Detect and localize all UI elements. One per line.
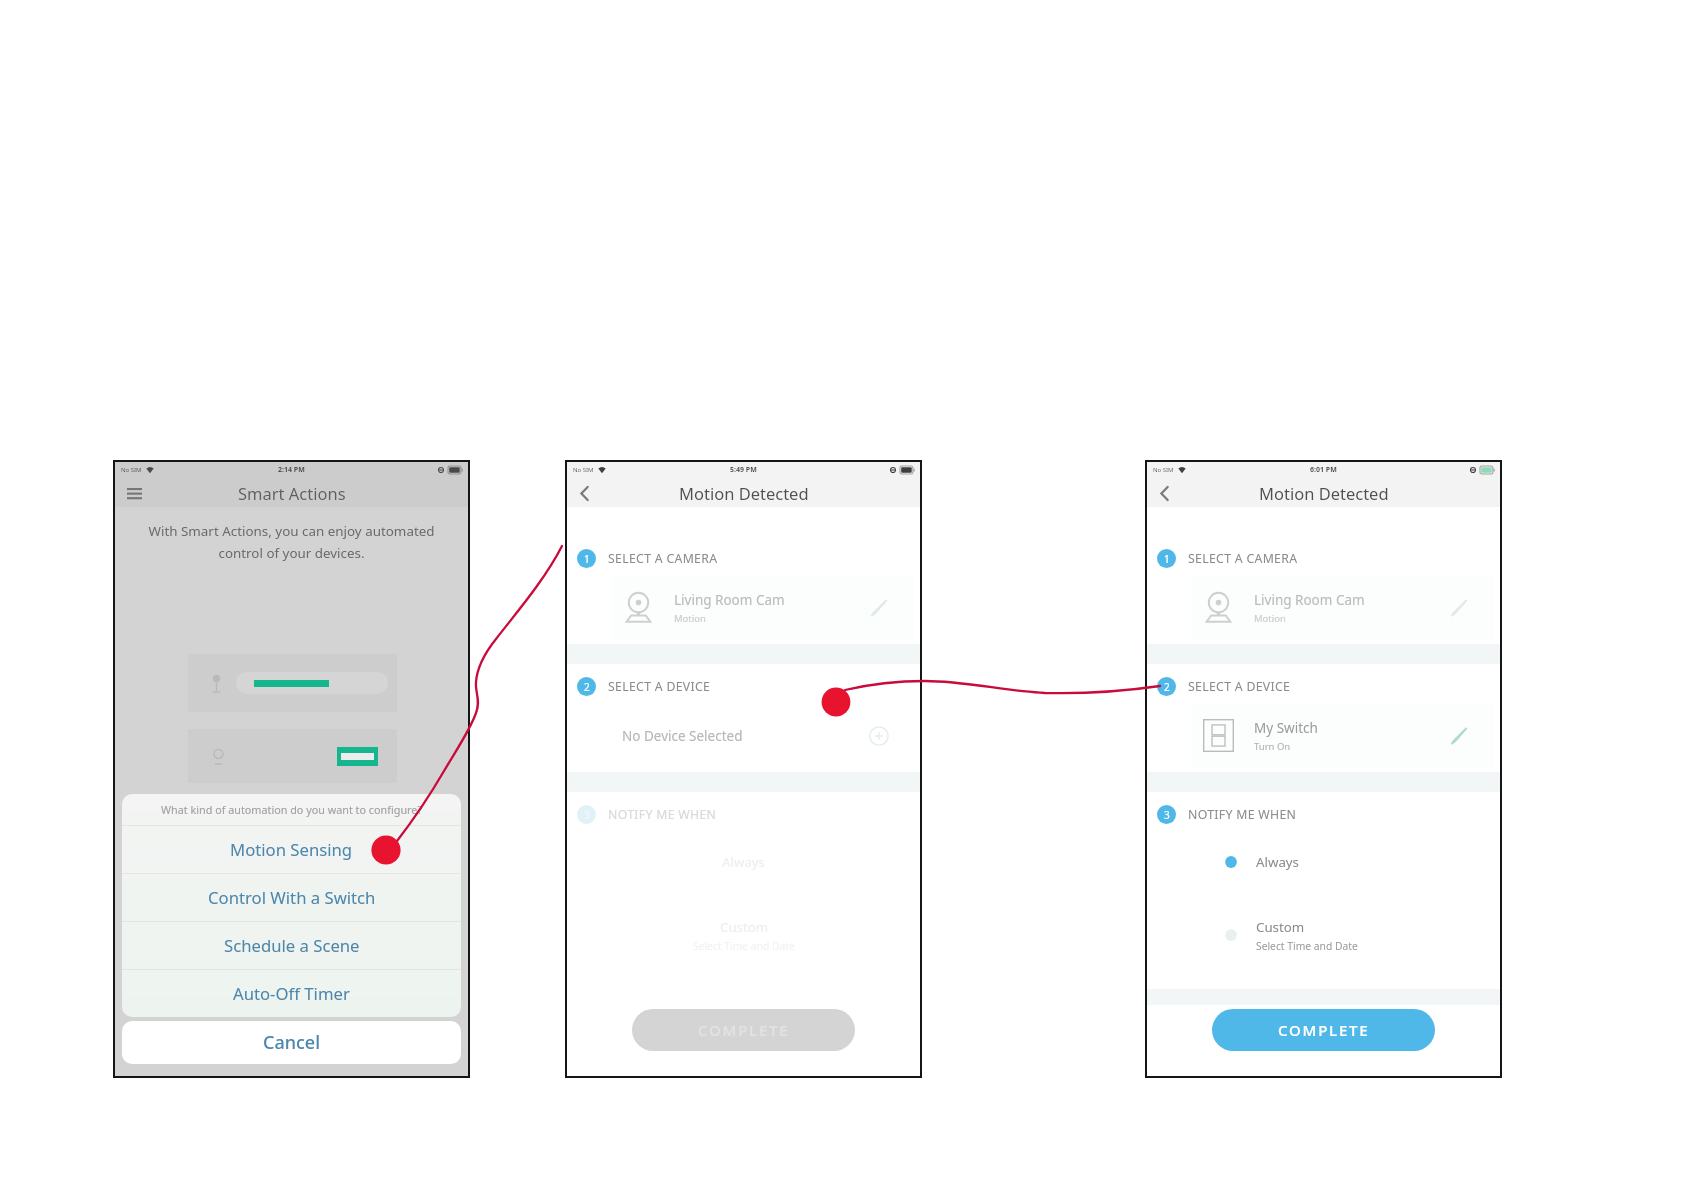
staticText: Living Room Cam (1254, 591, 1365, 609)
staticText: COMPLETE (698, 1020, 790, 1040)
staticText: Control With a Switch (208, 886, 376, 909)
staticText: What kind of automation do you want to c… (161, 802, 423, 817)
staticText: Motion Detected (1259, 482, 1389, 504)
staticText: Always (722, 853, 765, 871)
staticText: 1 (1164, 552, 1170, 566)
button[interactable] (188, 729, 397, 783)
button[interactable]: Edit Living Room Cam (1446, 595, 1472, 621)
staticText: 3 (584, 808, 590, 822)
staticText: No SIM (121, 466, 142, 474)
button[interactable]: Back (1153, 482, 1175, 504)
button[interactable]: Add device (866, 723, 892, 749)
button[interactable]: Menu (123, 482, 145, 504)
button[interactable]: Auto-Off Timer (122, 970, 461, 1017)
staticText: SELECT A CAMERA (608, 550, 718, 567)
staticText: Always (1256, 853, 1299, 871)
button[interactable]: Always (1224, 827, 1486, 897)
button[interactable]: COMPLETE (632, 1009, 855, 1051)
staticText: Motion (674, 612, 706, 625)
staticText: My Switch (1254, 719, 1318, 737)
staticText: NOTIFY ME WHEN (608, 806, 717, 823)
staticText: Select Time and Date (693, 939, 795, 953)
staticText: Cancel (263, 1030, 321, 1055)
staticText: SELECT A DEVICE (1188, 678, 1291, 695)
button[interactable]: Custom (1224, 897, 1486, 973)
staticText: No Device Selected (622, 727, 743, 745)
staticText: No SIM (1153, 466, 1174, 474)
button[interactable]: Living Room Cam (622, 575, 892, 640)
staticText: Custom (720, 918, 769, 936)
staticText: Auto-Off Timer (233, 982, 350, 1005)
button[interactable]: Edit Living Room Cam (866, 595, 892, 621)
staticText: Custom (1256, 918, 1305, 936)
staticText: SELECT A CAMERA (1188, 550, 1298, 567)
button[interactable]: Edit My Switch (1446, 723, 1472, 749)
staticText: Smart Actions (238, 482, 346, 504)
staticText: Motion Sensing (230, 838, 353, 861)
staticText: Living Room Cam (674, 591, 785, 609)
staticText: SELECT A DEVICE (608, 678, 711, 695)
staticText: Schedule a Scene (224, 934, 360, 957)
staticText: 2 (1164, 680, 1170, 694)
staticText: 5:49 PM (730, 465, 757, 475)
button[interactable]: Control With a Switch (122, 874, 461, 921)
button[interactable]: Schedule a Scene (122, 922, 461, 969)
staticText: COMPLETE (1278, 1020, 1370, 1040)
staticText: No SIM (573, 466, 594, 474)
staticText: 2 (584, 680, 590, 694)
staticText: 1 (584, 552, 590, 566)
button[interactable]: Cancel (122, 1021, 461, 1064)
staticText: With Smart Actions, you can enjoy automa… (115, 522, 468, 562)
button[interactable]: COMPLETE (1212, 1009, 1435, 1051)
button[interactable]: Back (573, 482, 595, 504)
button[interactable]: Living Room Cam (1202, 575, 1472, 640)
staticText: Turn On (1254, 740, 1291, 753)
button[interactable] (188, 654, 397, 712)
button[interactable]: No Device Selected (622, 699, 892, 772)
staticText: Select Time and Date (1256, 939, 1358, 953)
button[interactable]: Motion Sensing (122, 826, 461, 873)
staticText: NOTIFY ME WHEN (1188, 806, 1297, 823)
staticText: 3 (1164, 808, 1170, 822)
staticText: 6:01 PM (1310, 465, 1337, 475)
staticText: 2:14 PM (278, 465, 305, 475)
button[interactable]: My Switch (1202, 703, 1472, 768)
staticText: Motion Detected (679, 482, 809, 504)
staticText: Motion (1254, 612, 1286, 625)
